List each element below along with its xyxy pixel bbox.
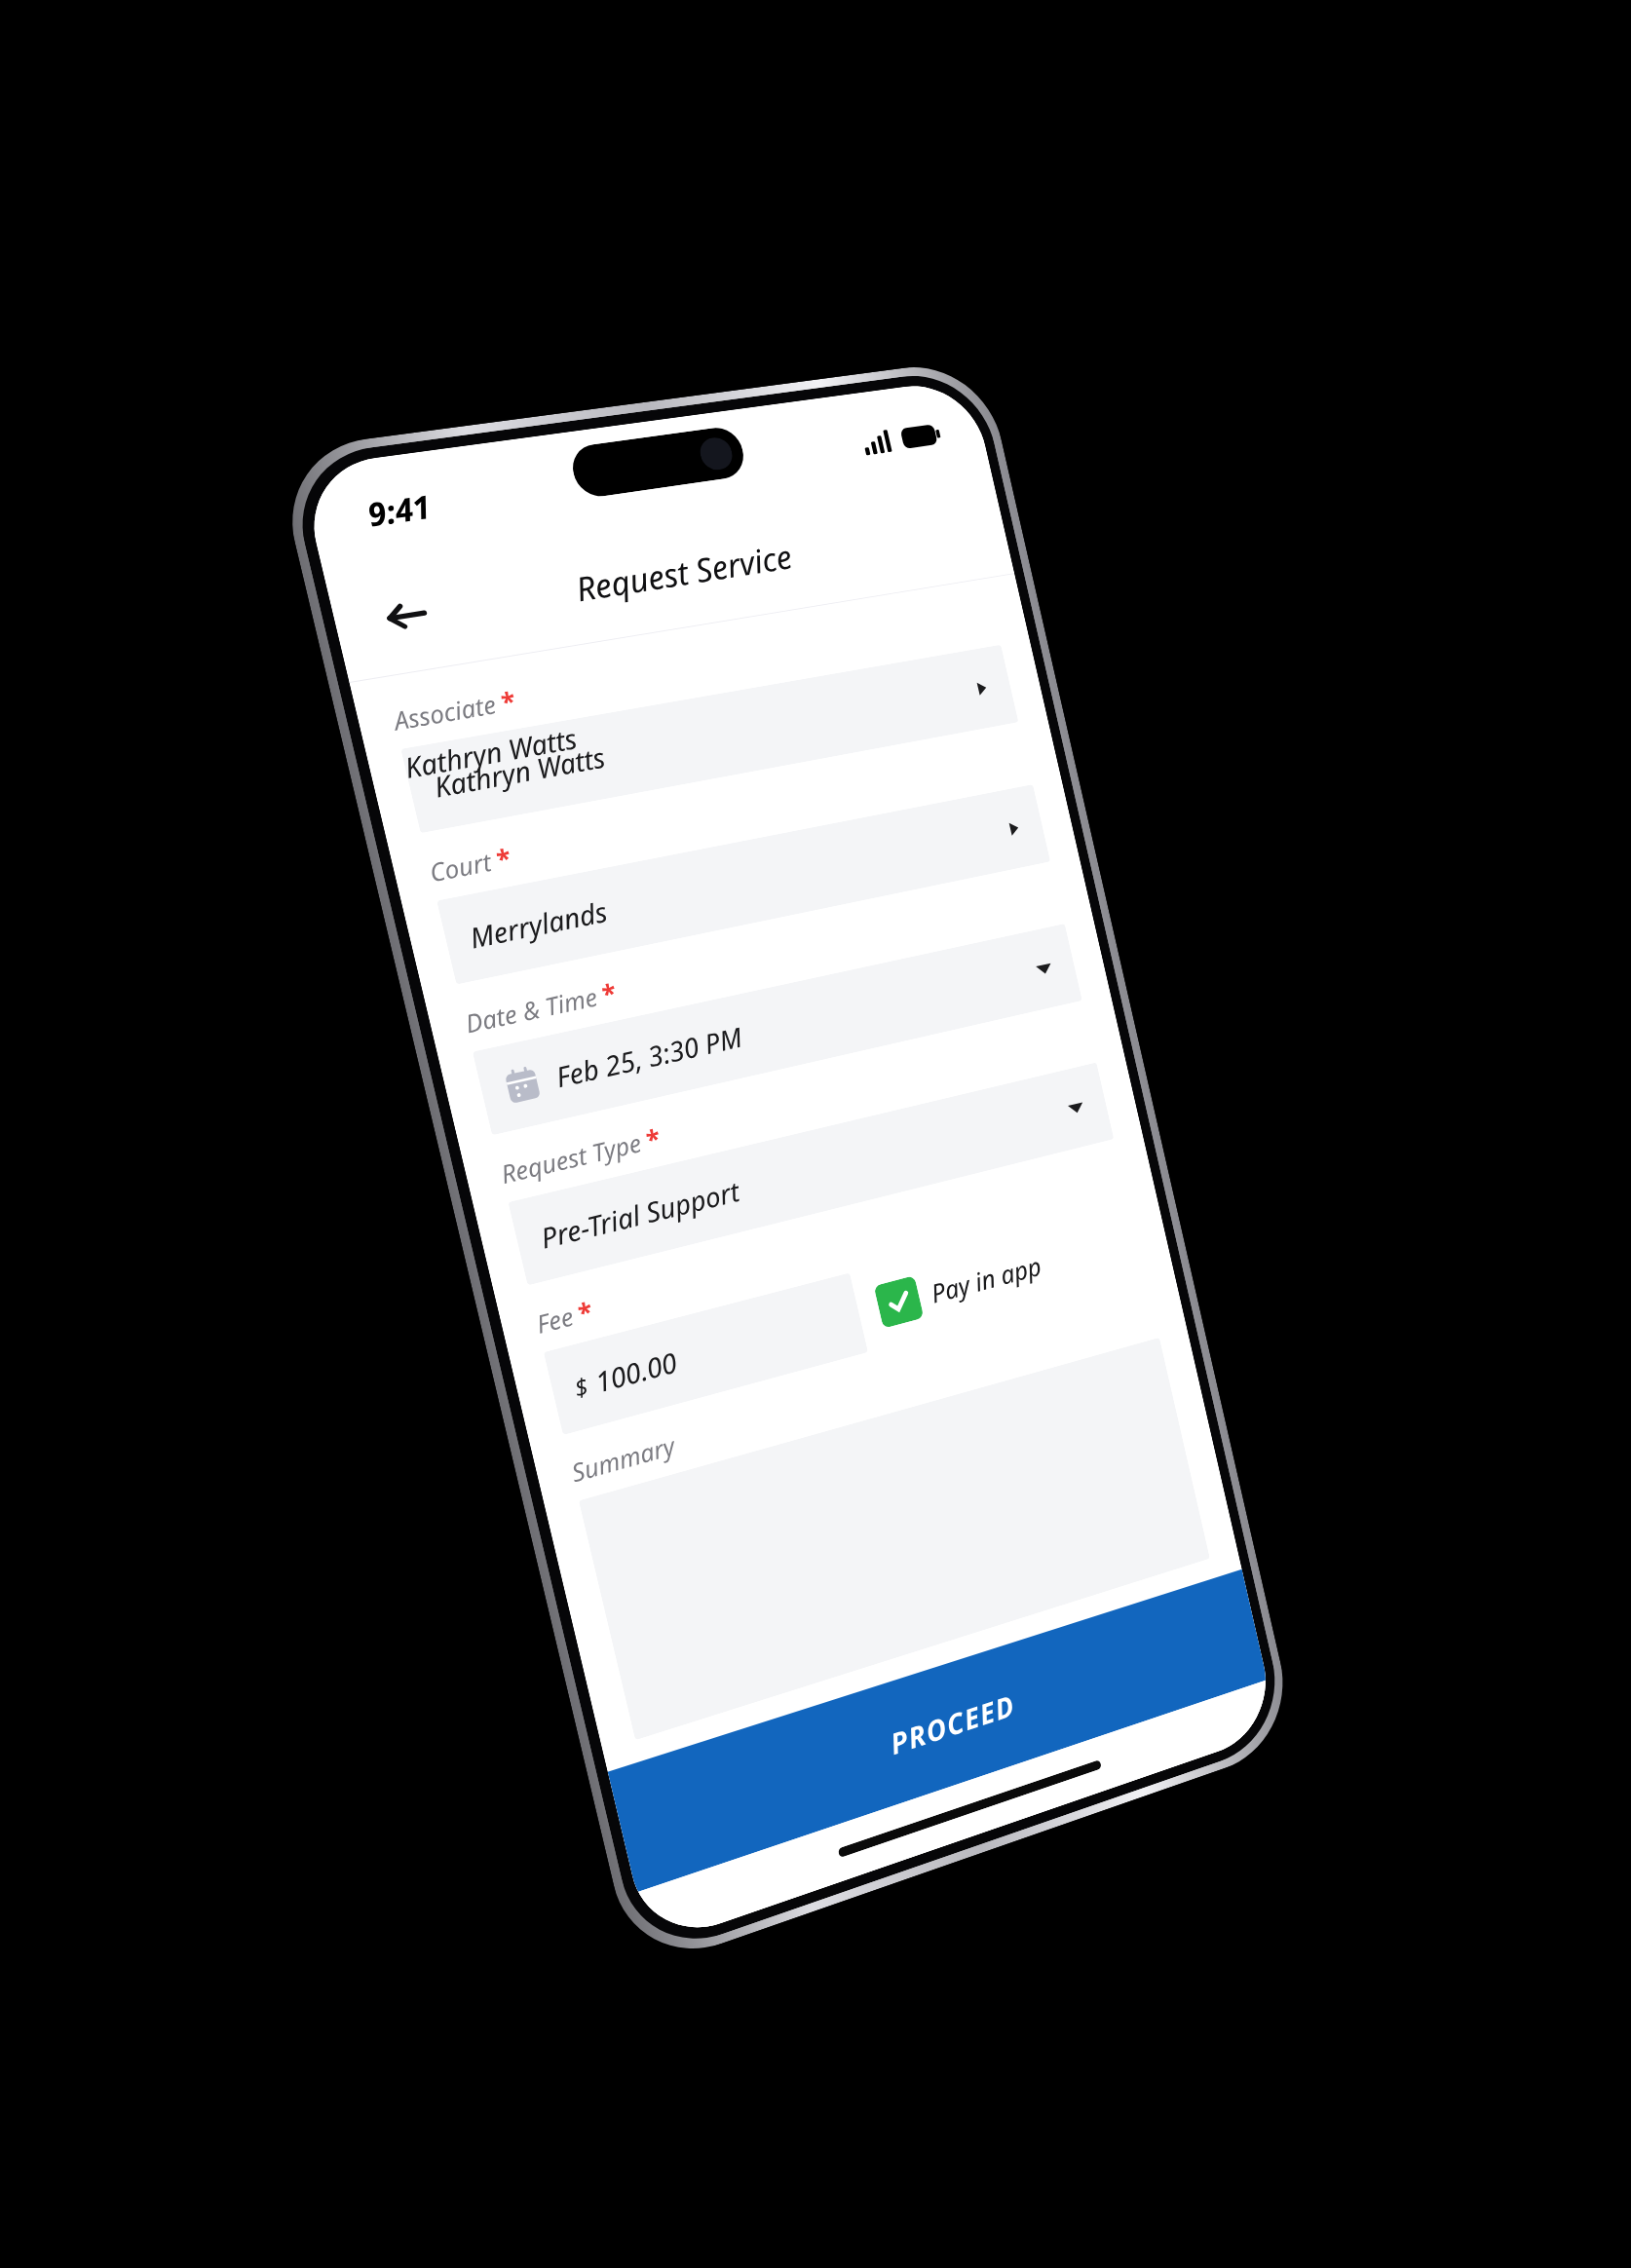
staticText: Fee — [533, 1299, 577, 1341]
button[interactable]: Pre-Trial Support — [508, 1062, 1114, 1285]
staticText: 100.00 — [592, 1343, 681, 1401]
button[interactable]: Back — [362, 575, 451, 657]
staticText: $ — [571, 1369, 592, 1404]
button[interactable]: Feb 25, 3:30 PM — [472, 924, 1082, 1135]
staticText: Pre-Trial Support — [537, 1172, 743, 1257]
staticText: Date & Time — [462, 979, 601, 1040]
button[interactable]: Merrylands — [437, 784, 1051, 985]
staticText: Kathryn Watts — [430, 738, 609, 805]
button[interactable]: PROCEED — [608, 1569, 1267, 1892]
staticText: Merrylands — [466, 892, 611, 956]
staticText: Court — [426, 844, 495, 889]
staticText: 9:41 — [363, 484, 436, 536]
staticText: * — [493, 839, 515, 876]
staticText: PROCEED — [886, 1685, 1019, 1763]
button[interactable] — [579, 1337, 1210, 1740]
staticText: Pay in app — [928, 1248, 1045, 1311]
staticText: Kathryn Watts — [401, 719, 580, 786]
button[interactable]: $ — [543, 1273, 868, 1435]
staticText: Request Service — [571, 534, 796, 611]
staticText: * — [643, 1120, 665, 1156]
staticText: * — [574, 1293, 597, 1330]
staticText: Feb 25, 3:30 PM — [552, 1018, 746, 1095]
staticText: Summary — [568, 1428, 678, 1489]
staticText: Request Type — [497, 1125, 645, 1191]
staticText: * — [497, 682, 520, 719]
button[interactable]: Kathryn Watts — [401, 645, 1019, 833]
button[interactable]: Pay in app — [874, 1218, 1142, 1329]
staticText: * — [598, 974, 621, 1011]
staticText: Associate — [390, 687, 500, 737]
